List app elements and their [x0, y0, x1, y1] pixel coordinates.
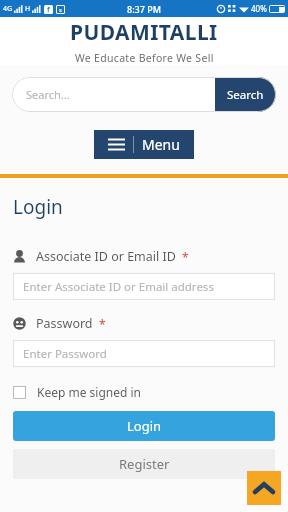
- staticText: H: [25, 4, 31, 14]
- button[interactable]: Enter Password: [13, 340, 275, 367]
- staticText: Search: [227, 87, 264, 103]
- button[interactable]: Search: [215, 77, 276, 112]
- staticText: Password: [36, 315, 93, 332]
- button[interactable]: Enter Associate ID or Email address: [13, 273, 275, 300]
- button[interactable]: Keep me signed in: [13, 384, 141, 400]
- staticText: Menu: [142, 135, 180, 154]
- button[interactable]: Login: [13, 411, 275, 441]
- staticText: Associate ID or Email ID: [36, 248, 176, 265]
- staticText: Register: [119, 455, 170, 473]
- staticText: Enter Password: [23, 346, 107, 362]
- button[interactable]: Menu: [94, 130, 194, 159]
- staticText: Search...: [26, 87, 70, 102]
- staticText: We Educate Before We Sell: [75, 51, 214, 65]
- button[interactable]: Search...: [12, 77, 215, 112]
- staticText: Enter Associate ID or Email address: [23, 279, 214, 295]
- staticText: f: [47, 5, 50, 14]
- staticText: Login: [127, 417, 162, 435]
- staticText: s: [59, 6, 62, 14]
- staticText: Login: [13, 194, 63, 220]
- button[interactable]: Scroll to top: [247, 471, 281, 505]
- staticText: Keep me signed in: [37, 384, 141, 400]
- staticText: *: [182, 249, 189, 265]
- staticText: PUDAMITALLI: [70, 18, 218, 47]
- staticText: *: [99, 316, 106, 332]
- staticText: 40%: [251, 3, 267, 14]
- button[interactable]: Register: [13, 449, 275, 479]
- staticText: 4G: [3, 4, 13, 14]
- staticText: 8:37 PM: [127, 3, 161, 15]
